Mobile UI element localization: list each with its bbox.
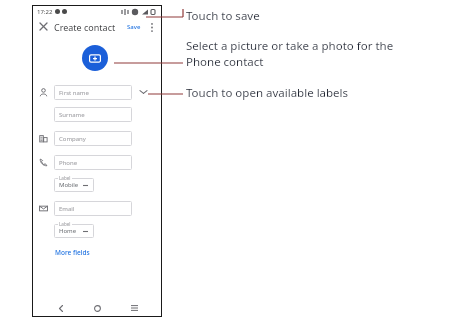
staticText: Phone xyxy=(59,159,78,167)
button[interactable]: Touch to open available labels xyxy=(136,85,150,99)
staticText: More fields xyxy=(55,248,90,257)
button[interactable]: Select a picture or take a photo xyxy=(82,45,108,71)
button[interactable]: Recent apps xyxy=(126,300,142,316)
button[interactable]: Back xyxy=(53,300,69,316)
staticText: Create contact xyxy=(54,21,116,33)
button[interactable]: Close xyxy=(37,20,50,33)
button[interactable]: Save xyxy=(125,21,143,33)
staticText: First name xyxy=(59,89,89,97)
button[interactable]: Surname xyxy=(54,107,132,122)
staticText: Save xyxy=(127,23,141,31)
staticText: Touch to save xyxy=(186,8,260,24)
button[interactable]: Email xyxy=(54,201,132,216)
staticText: Select a picture or take a photo for the… xyxy=(186,38,394,69)
staticText: 17:22 xyxy=(37,8,53,16)
button[interactable]: Company xyxy=(54,131,132,146)
staticText: Label xyxy=(59,221,71,227)
staticText: Company xyxy=(59,135,86,143)
button[interactable]: Home xyxy=(89,300,105,316)
button[interactable]: First name xyxy=(54,85,132,100)
staticText: Label xyxy=(59,175,71,181)
button[interactable]: Phone xyxy=(54,155,132,170)
staticText: Surname xyxy=(59,111,85,119)
button[interactable]: Touch to open available labels xyxy=(54,224,94,238)
button[interactable]: Touch to open available labels xyxy=(54,178,94,192)
button[interactable]: More options xyxy=(146,21,158,33)
staticText: Home xyxy=(59,227,77,235)
staticText: Touch to open available labels xyxy=(186,85,349,101)
button[interactable]: More fields xyxy=(54,247,91,258)
staticText: Email xyxy=(59,205,75,213)
staticText: Mobile xyxy=(59,181,79,189)
